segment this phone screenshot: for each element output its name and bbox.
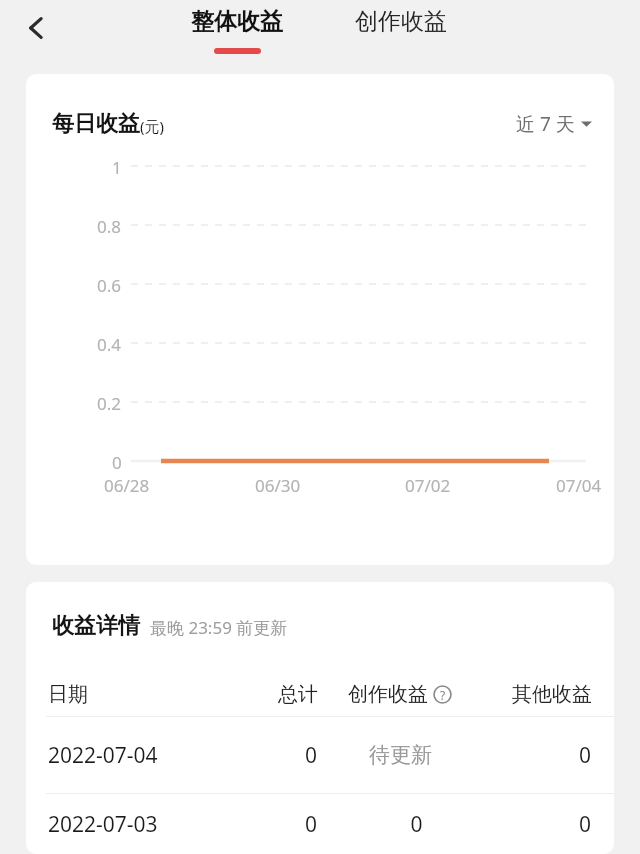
staticText: 0 bbox=[305, 810, 318, 839]
staticText: 06/28 bbox=[104, 474, 150, 497]
staticText: 收益详情 bbox=[52, 612, 140, 640]
staticText: ? bbox=[440, 687, 446, 703]
staticText: 2022-07-03 bbox=[48, 810, 158, 839]
staticText: 整体收益 bbox=[191, 7, 283, 36]
button[interactable]: Help about creation earnings bbox=[433, 685, 452, 704]
staticText: 0.2 bbox=[97, 392, 122, 415]
button[interactable]: 创作收益 bbox=[330, 0, 472, 62]
staticText: 其他收益 bbox=[512, 682, 592, 707]
staticText: 创作收益 bbox=[348, 682, 428, 707]
staticText: 日期 bbox=[48, 682, 88, 707]
staticText: 06/30 bbox=[255, 474, 301, 497]
staticText: 0 bbox=[579, 741, 592, 770]
staticText: 07/04 bbox=[556, 474, 602, 497]
staticText: 每日收益 bbox=[52, 110, 140, 138]
staticText: 创作收益 bbox=[355, 7, 447, 36]
staticText: 总计 bbox=[278, 682, 318, 707]
button[interactable]: 2022-07-03 bbox=[26, 794, 614, 854]
staticText: 07/02 bbox=[405, 474, 451, 497]
button[interactable]: 2022-07-04 bbox=[26, 717, 614, 793]
staticText: 最晚 23:59 前更新 bbox=[150, 616, 288, 639]
staticText: 0 bbox=[112, 451, 122, 474]
button[interactable]: Back bbox=[14, 4, 62, 52]
staticText: (元) bbox=[140, 116, 165, 136]
staticText: 0.6 bbox=[97, 274, 122, 297]
staticText: 0.8 bbox=[97, 215, 122, 238]
staticText: 待更新 bbox=[369, 742, 432, 768]
staticText: 近 7 天 bbox=[516, 111, 575, 137]
staticText: 2022-07-04 bbox=[48, 741, 158, 770]
button[interactable]: 近 7 天 bbox=[516, 111, 592, 137]
button[interactable]: 整体收益 bbox=[166, 0, 308, 62]
staticText: 1 bbox=[112, 156, 122, 179]
staticText: 0 bbox=[410, 810, 423, 839]
staticText: 0 bbox=[305, 741, 318, 770]
staticText: 0 bbox=[579, 810, 592, 839]
staticText: 0.4 bbox=[97, 333, 122, 356]
